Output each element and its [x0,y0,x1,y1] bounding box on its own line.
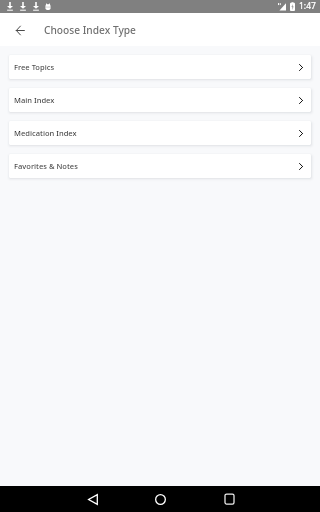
button[interactable]: Recent apps [209,486,249,512]
staticText: 1:47 [299,0,316,12]
staticText: Choose Index Type [44,23,136,37]
staticText: Free Topics [14,62,55,72]
button[interactable]: Main Index [9,88,311,112]
staticText: Medication Index [14,128,77,138]
button[interactable]: Medication Index [9,121,311,145]
staticText: Favorites & Notes [14,161,78,171]
button[interactable]: Free Topics [9,55,311,79]
button[interactable]: Home [140,486,180,512]
button[interactable]: Back [73,486,113,512]
button[interactable]: Back [4,15,36,46]
button[interactable]: Favorites & Notes [9,154,311,178]
staticText: Main Index [14,95,55,105]
